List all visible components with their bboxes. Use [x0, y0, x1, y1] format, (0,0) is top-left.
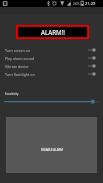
staticText: Vibrate device	[5, 64, 29, 69]
button[interactable]: Turn flashlight on	[0, 70, 103, 78]
staticText: 21:29	[85, 1, 96, 6]
staticText: Play alarm sound	[5, 56, 35, 61]
staticText: Turn screen on	[5, 48, 31, 53]
button[interactable]: DISABLE ALARM	[6, 117, 97, 173]
staticText: Turn flashlight on	[5, 72, 35, 77]
staticText: Sensitivity	[5, 92, 19, 96]
button[interactable]: Sensitivity slider	[0, 96, 103, 108]
button[interactable]: Play alarm sound	[0, 54, 103, 62]
button[interactable]: Vibrate device	[0, 62, 103, 70]
staticText: ALARM!!	[41, 28, 65, 36]
staticText: DISABLE ALARM	[41, 148, 63, 152]
staticText: 24%	[73, 2, 80, 6]
button[interactable]: Turn screen on	[0, 46, 103, 54]
button[interactable]: ALARM!!	[16, 25, 89, 39]
